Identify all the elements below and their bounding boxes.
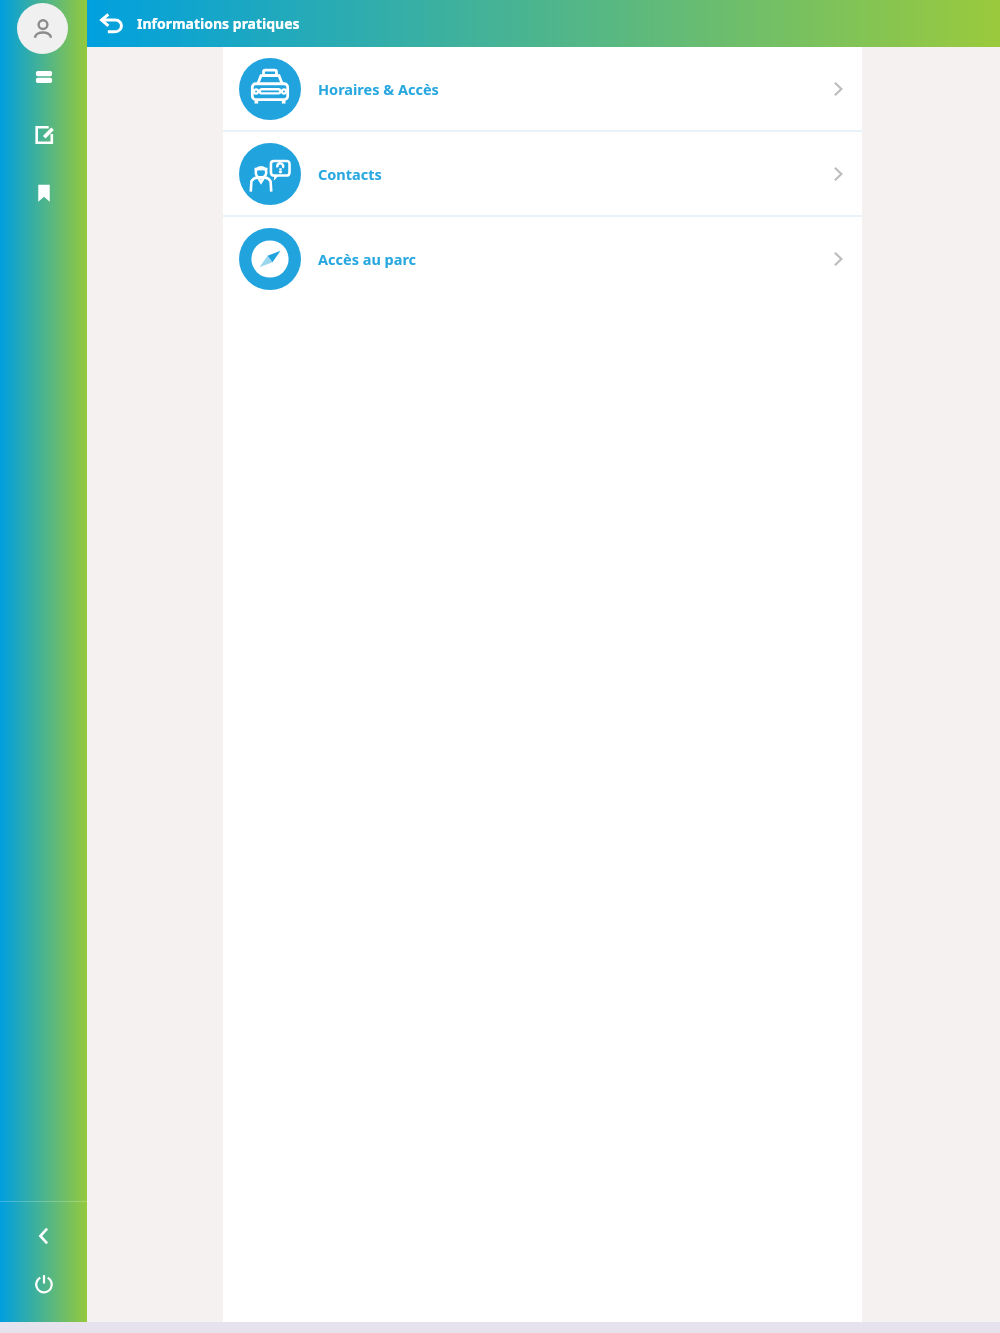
button[interactable]: Power [0,1268,87,1300]
button[interactable]: Back [87,0,137,47]
staticText: Contacts [318,164,825,184]
staticText: Horaires & Accès [318,79,825,99]
button[interactable]: Profile [17,3,68,54]
button[interactable]: Menu [0,61,87,93]
staticText: Accès au parc [318,249,825,269]
button[interactable]: Horaires & Accès [223,47,862,130]
button[interactable]: Bookmarks [0,177,87,209]
staticText: Informations pratiques [137,14,300,33]
button[interactable]: Back [0,1220,87,1252]
button[interactable]: Accès au parc [223,217,862,300]
button[interactable]: Edit [0,119,87,151]
button[interactable]: Contacts [223,132,862,215]
